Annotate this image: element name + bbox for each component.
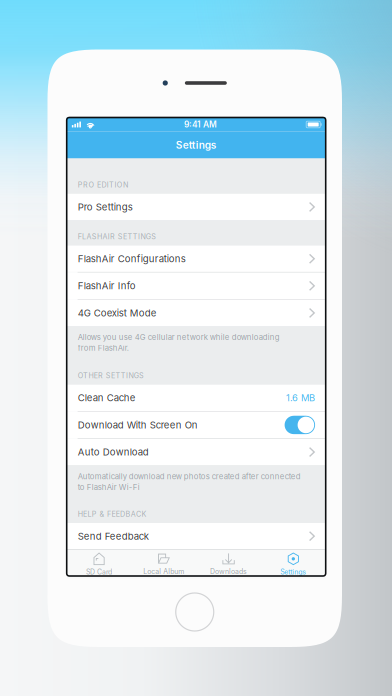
button[interactable]: Downloads bbox=[196, 550, 261, 579]
button[interactable]: FlashAir Info bbox=[67, 273, 326, 299]
staticText: 9:41 AM bbox=[184, 119, 217, 130]
button[interactable]: SD Card bbox=[67, 550, 131, 579]
staticText: SD Card bbox=[86, 568, 112, 576]
staticText: OTHER SETTINGS bbox=[78, 371, 144, 380]
button[interactable]: Auto Download bbox=[67, 439, 326, 465]
button[interactable]: Pro Settings bbox=[67, 194, 326, 220]
button[interactable]: Settings bbox=[261, 550, 326, 579]
staticText: Auto Download bbox=[78, 446, 149, 458]
button[interactable]: Send Feedback bbox=[67, 523, 326, 549]
button[interactable]: FlashAir Configurations bbox=[67, 246, 326, 272]
staticText: from FlashAir. bbox=[78, 343, 129, 353]
staticText: to FlashAir Wi-Fi bbox=[78, 482, 140, 492]
staticText: HELP & FEEDBACK bbox=[78, 510, 146, 518]
staticText: 4G Coexist Mode bbox=[78, 307, 157, 319]
button[interactable]: Clean Cache bbox=[67, 385, 326, 411]
button[interactable]: Local Album bbox=[131, 550, 196, 579]
staticText: Download With Screen On bbox=[78, 419, 198, 431]
button[interactable]: 4G Coexist Mode bbox=[67, 300, 326, 326]
staticText: Settings bbox=[176, 139, 217, 151]
staticText: 1.6 MB bbox=[286, 392, 315, 403]
staticText: PRO EDITION bbox=[78, 180, 128, 189]
button[interactable]: Download With Screen On bbox=[67, 412, 326, 438]
staticText: Clean Cache bbox=[78, 392, 136, 404]
staticText: Pro Settings bbox=[78, 201, 133, 213]
staticText: Automatically download new photos create… bbox=[78, 472, 301, 481]
staticText: FLASHAIR SETTINGS bbox=[78, 232, 156, 241]
staticText: FlashAir Configurations bbox=[78, 253, 186, 264]
staticText: Downloads bbox=[210, 567, 247, 576]
staticText: Allows you use 4G cellular network while… bbox=[78, 333, 280, 342]
staticText: Send Feedback bbox=[78, 530, 149, 542]
staticText: Local Album bbox=[143, 567, 184, 576]
staticText: FlashAir Info bbox=[78, 280, 136, 292]
staticText: Settings bbox=[280, 568, 306, 576]
